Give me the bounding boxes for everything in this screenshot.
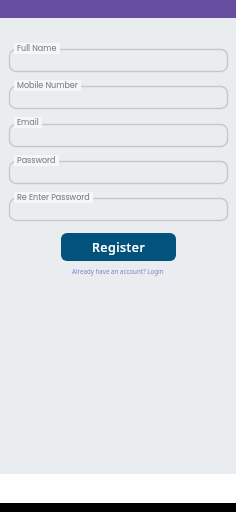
button[interactable] — [9, 49, 228, 72]
button[interactable] — [9, 198, 228, 221]
button[interactable] — [9, 86, 228, 109]
staticText: Register — [92, 239, 146, 256]
button[interactable]: Already have an account? Login — [68, 266, 168, 276]
button[interactable] — [9, 161, 228, 184]
staticText: Full Name — [17, 43, 57, 54]
button[interactable] — [9, 124, 228, 147]
staticText: Mobile Number — [17, 80, 78, 91]
staticText: Password — [17, 155, 56, 166]
staticText: Email — [17, 117, 39, 128]
staticText: Already have an account? Login — [72, 267, 164, 275]
button[interactable]: Register — [61, 233, 176, 261]
staticText: Re Enter Password — [17, 192, 90, 203]
